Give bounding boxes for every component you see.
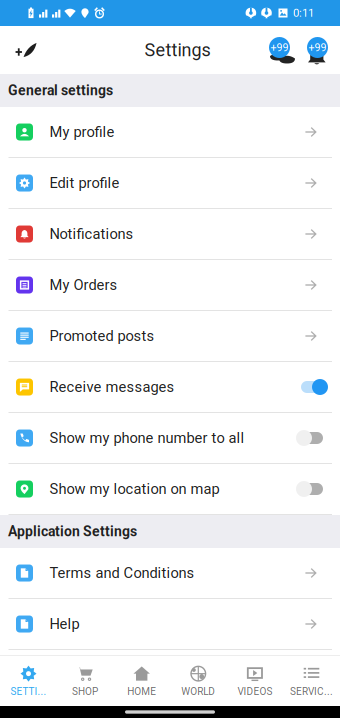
button[interactable]: SERVIC... — [283, 656, 340, 706]
staticText: Receive messages — [49, 378, 174, 396]
button[interactable]: Show my phone number to all — [0, 413, 340, 464]
staticText: +99 — [270, 41, 288, 54]
staticText: General settings — [8, 82, 113, 99]
staticText: Terms and Conditions — [49, 564, 194, 582]
button[interactable]: SETTI... — [0, 656, 57, 706]
button[interactable]: Terms and Conditions — [0, 548, 340, 599]
staticText: Help — [49, 615, 79, 633]
staticText: WORLD — [181, 686, 215, 697]
staticText: Promoted posts — [49, 327, 154, 345]
staticText: My Orders — [49, 276, 117, 294]
staticText: +99 — [308, 41, 326, 54]
button[interactable]: My profile — [0, 107, 340, 158]
staticText: HOME — [127, 686, 156, 697]
staticText: 0:11 — [293, 6, 314, 20]
staticText: SERVIC... — [290, 686, 333, 697]
staticText: VIDEOS — [237, 686, 272, 697]
button[interactable]: Notifications — [0, 209, 340, 260]
button[interactable]: Receive messages — [0, 362, 340, 413]
button[interactable]: Compose — [0, 33, 42, 67]
staticText: My profile — [49, 123, 114, 141]
staticText: Application Settings — [8, 523, 137, 540]
staticText: Show my phone number to all — [49, 429, 244, 447]
button[interactable]: Show my location on map — [0, 464, 340, 515]
staticText: Notifications — [49, 225, 133, 243]
staticText: SETTI... — [10, 686, 46, 697]
staticText: Show my location on map — [49, 480, 219, 498]
button[interactable]: WORLD — [170, 656, 227, 706]
staticText: Settings — [144, 39, 210, 61]
button[interactable]: VIDEOS — [227, 656, 283, 706]
button[interactable]: SHOP — [57, 656, 113, 706]
staticText: Edit profile — [49, 174, 119, 192]
button[interactable]: Notifications — [302, 35, 332, 65]
button[interactable]: My Orders — [0, 260, 340, 311]
button[interactable]: Edit profile — [0, 158, 340, 209]
button[interactable]: HOME — [113, 656, 170, 706]
staticText: SHOP — [72, 686, 98, 697]
button[interactable]: Messages — [267, 35, 297, 65]
button[interactable]: Promoted posts — [0, 311, 340, 362]
button[interactable]: Help — [0, 599, 340, 650]
